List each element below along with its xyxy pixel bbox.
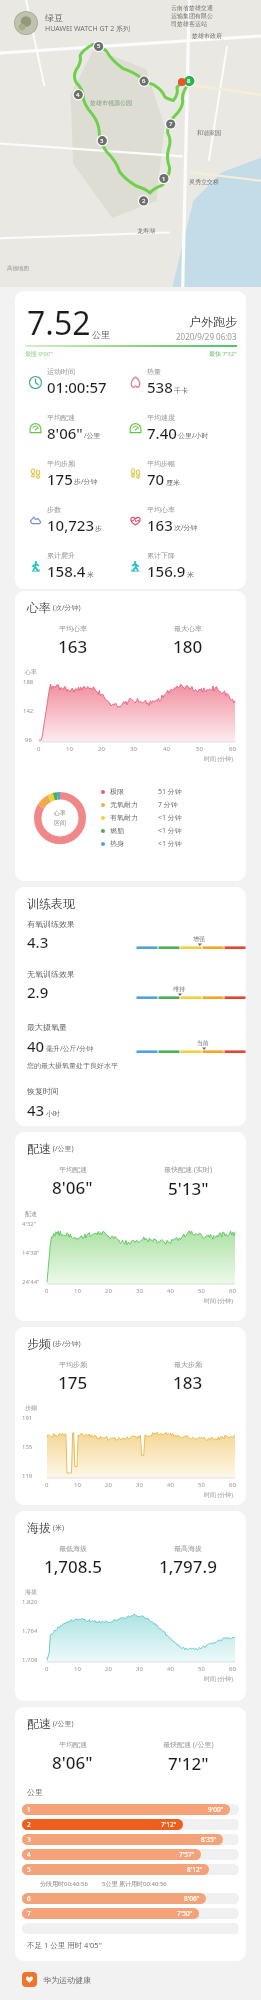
staticText: 无氧耐力 [110, 800, 138, 809]
button[interactable]: 运动时间 [28, 359, 128, 405]
staticText: 50 [196, 745, 203, 753]
button[interactable]: 5 [22, 1864, 239, 1875]
staticText: 60 [229, 1481, 236, 1489]
staticText: 训练表现 [27, 896, 75, 911]
staticText: 心率 [27, 600, 51, 615]
staticText: 最大心率 [174, 624, 202, 633]
staticText: 8'06" [184, 1894, 200, 1903]
button[interactable]: 平均心率 [128, 497, 246, 543]
staticText: 时间 (分钟) [204, 755, 234, 763]
staticText: 最大步频 [174, 1360, 202, 1369]
button[interactable]: 无氧耐力 [101, 798, 234, 811]
button[interactable]: 平均速度 [128, 405, 246, 451]
button[interactable]: 极限 [101, 785, 234, 798]
staticText: 538 [147, 377, 173, 397]
staticText: 平均心率 [59, 624, 87, 633]
button[interactable]: 热身 [101, 837, 234, 850]
staticText: 有氧训练效果 [27, 919, 75, 929]
button[interactable]: 心率 [27, 600, 81, 615]
staticText: 60 [229, 745, 236, 753]
staticText: 热身 [110, 839, 124, 848]
staticText: 海拔 [25, 1588, 37, 1596]
staticText: 3 [100, 137, 104, 145]
staticText: 平均步频 [47, 459, 75, 468]
staticText: 30 [130, 745, 137, 753]
staticText: 01:00:57 [47, 377, 107, 397]
button[interactable]: 训练表现 [27, 896, 75, 911]
staticText: 公里 [27, 1787, 43, 1797]
staticText: 和谐家园 [197, 129, 221, 137]
staticText: 1,797.9 [159, 1555, 217, 1578]
staticText: 7.52 [27, 301, 91, 345]
staticText: 步频 [25, 1404, 37, 1412]
staticText: <1 分钟 [158, 813, 182, 823]
button[interactable]: 累计爬升 [28, 543, 128, 589]
staticText: 30 [136, 1665, 143, 1673]
staticText: 平均配速 [59, 1740, 87, 1749]
button[interactable]: 燃脂 [101, 824, 234, 837]
button[interactable]: 配速 [27, 1141, 74, 1156]
staticText: 30 [136, 1481, 143, 1489]
button[interactable]: 7 [22, 1908, 239, 1919]
staticText: 40 [167, 1287, 174, 1295]
button[interactable]: 1 [22, 1804, 239, 1815]
staticText: 0 [45, 1481, 49, 1489]
staticText: <1 分钟 [158, 826, 182, 836]
staticText: 180 [173, 635, 203, 658]
staticText: (/公里) [51, 1719, 74, 1729]
staticText: 20 [98, 745, 105, 753]
staticText: 当前 [197, 1039, 209, 1047]
button[interactable]: 热量 [128, 359, 246, 405]
staticText: 6 [142, 77, 146, 85]
staticText: HUAWEI WATCH GT 2 系列 [45, 24, 131, 34]
staticText: 步数 [47, 505, 61, 514]
staticText: 163 [147, 515, 173, 535]
staticText: 1,708.5 [44, 1555, 102, 1578]
staticText: 高德地图 [7, 265, 29, 272]
staticText: 10 [74, 1287, 81, 1295]
staticText: 心率 [25, 668, 37, 676]
staticText: 7 [169, 120, 173, 128]
button[interactable]: 华为运动健康 [22, 1972, 261, 1987]
staticText: 40 [163, 745, 170, 753]
staticText: 4 [27, 1850, 31, 1859]
staticText: 平均步频 [59, 1360, 87, 1369]
button[interactable]: 配速 [27, 1716, 74, 1731]
staticText: 楚雄市政府 [192, 32, 222, 40]
button[interactable]: 步数 [28, 497, 128, 543]
button[interactable]: 有氧耐力 [101, 811, 234, 824]
staticText: 热量 [147, 367, 161, 376]
staticText: 最快 7'12" [209, 350, 237, 358]
staticText: 163 [58, 635, 88, 658]
button[interactable]: 2 [22, 1819, 239, 1830]
button[interactable]: 平均配速 [28, 405, 128, 451]
button[interactable]: 平均步频 [28, 451, 128, 497]
staticText: (米) [51, 1523, 65, 1533]
button[interactable]: 6 [22, 1893, 239, 1904]
staticText: 小时 [46, 1109, 60, 1118]
button[interactable]: 步频 [27, 1336, 81, 1351]
staticText: 50 [198, 1481, 205, 1489]
button[interactable]: 平均步幅 [128, 451, 246, 497]
staticText: 10 [66, 745, 73, 753]
staticText: 20 [105, 1481, 112, 1489]
button[interactable]: 4 [22, 1849, 239, 1860]
staticText: 7 分钟 [158, 800, 178, 810]
staticText: 8'35" [201, 1835, 217, 1844]
staticText: 51 分钟 [158, 787, 182, 797]
staticText: 7 [27, 1909, 31, 1918]
button[interactable]: 海拔 [27, 1520, 65, 1535]
staticText: 0 [45, 1665, 49, 1673]
staticText: 4'32" [22, 1220, 37, 1228]
staticText: 楚雄市桃源公园 [90, 99, 132, 107]
staticText: 您的最大摄氧量处于良好水平 [27, 1061, 118, 1070]
button[interactable]: 累计下降 [128, 543, 246, 589]
staticText: 0 [37, 745, 41, 753]
staticText: (次/分钟) [51, 603, 81, 613]
staticText: 配速 [27, 1716, 51, 1731]
staticText: 2 [142, 197, 146, 205]
staticText: 7'50" [177, 1909, 193, 1918]
staticText: 50 [198, 1665, 205, 1673]
button[interactable]: 3 [22, 1834, 239, 1845]
